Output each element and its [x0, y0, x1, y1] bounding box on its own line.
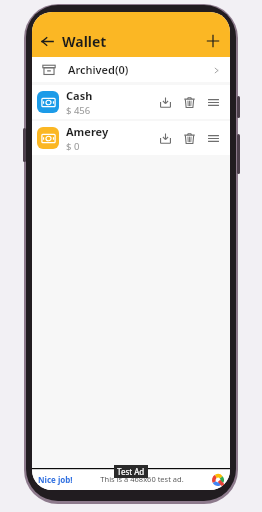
- button[interactable]: Archive: [153, 90, 177, 114]
- button[interactable]: Add wallet: [196, 25, 230, 57]
- staticText: $ 0: [66, 140, 80, 153]
- staticText: This is a 468x60 test ad.: [100, 474, 184, 484]
- button[interactable]: Cash: [32, 85, 230, 119]
- button[interactable]: Delete: [177, 90, 201, 114]
- staticText: Amerey: [66, 124, 109, 139]
- staticText: Test Ad: [117, 466, 145, 477]
- button[interactable]: Archive: [153, 126, 177, 150]
- button[interactable]: Delete: [177, 126, 201, 150]
- button[interactable]: Amerey: [32, 121, 230, 155]
- button[interactable]: Reorder: [201, 126, 225, 150]
- button[interactable]: Nice job!: [38, 474, 73, 485]
- staticText: Wallet: [62, 32, 107, 51]
- button[interactable]: Reorder: [201, 90, 225, 114]
- button[interactable]: Archived(0): [32, 57, 230, 82]
- staticText: Archived(0): [68, 62, 129, 77]
- staticText: Cash: [66, 88, 93, 103]
- button[interactable]: Back: [32, 26, 62, 56]
- staticText: $ 456: [66, 104, 91, 117]
